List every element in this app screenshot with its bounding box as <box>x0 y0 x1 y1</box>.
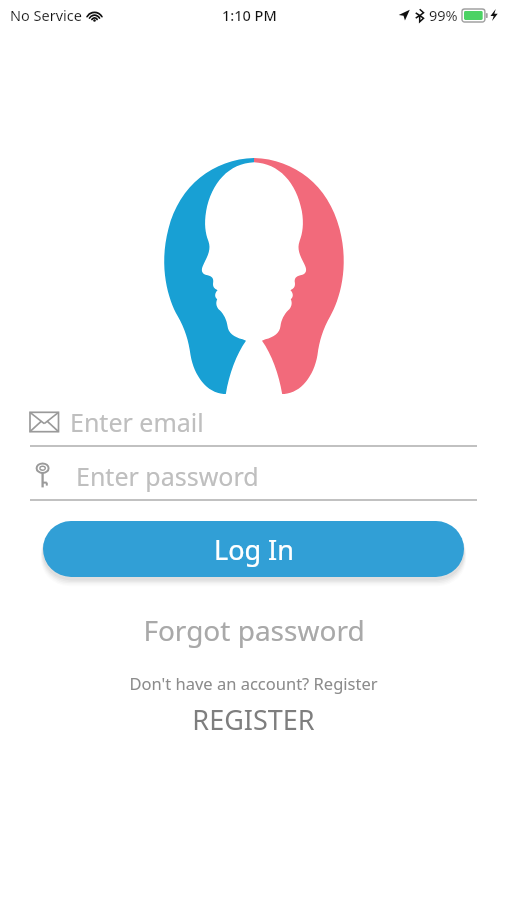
button[interactable]: Forgot password <box>0 611 507 649</box>
staticText: No Service <box>10 5 82 25</box>
button[interactable]: Don't have an account? Register <box>0 672 507 694</box>
other: Email <box>30 407 60 437</box>
staticText: 1:10 PM <box>222 5 277 25</box>
button[interactable]: Email <box>30 404 477 447</box>
staticText: Enter password <box>76 459 259 493</box>
staticText: Enter email <box>70 405 204 439</box>
staticText: 99% <box>429 5 458 25</box>
staticText: Forgot password <box>143 611 365 649</box>
staticText: Log In <box>214 531 294 568</box>
staticText: Don't have an account? Register <box>129 672 378 694</box>
button[interactable]: Password <box>30 458 477 501</box>
button[interactable]: REGISTER <box>0 701 507 738</box>
button[interactable]: Log In <box>43 521 464 577</box>
other: Password <box>30 461 60 491</box>
staticText: REGISTER <box>192 701 315 738</box>
